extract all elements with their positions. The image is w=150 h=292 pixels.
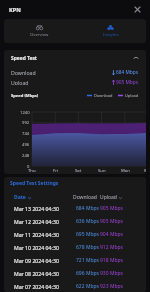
staticText: Mar 07 2024 04:30 [14, 283, 59, 290]
button[interactable]: Overview [4, 19, 75, 43]
staticText: Thu [28, 168, 36, 174]
staticText: 721 Mbps [76, 257, 99, 264]
staticText: Overview [30, 32, 49, 38]
staticText: Mar 12 2024 04:30 [14, 218, 59, 225]
button[interactable]: Mar 08 2024 04:30 [4, 267, 146, 280]
staticText: Download [94, 93, 113, 98]
staticText: 912 Mbps [100, 244, 123, 251]
staticText: Mar 10 2024 04:30 [14, 244, 59, 251]
staticText: Upload [100, 194, 117, 201]
staticText: 905 Mbps [100, 205, 123, 212]
staticText: 636 Mbps [76, 218, 99, 225]
button[interactable]: Mar 11 2024 04:30 [4, 228, 146, 241]
staticText: Fri [53, 168, 58, 174]
button[interactable]: Date [14, 193, 31, 202]
button[interactable]: Mar 07 2024 04:30 [4, 280, 146, 292]
staticText: 992 [22, 120, 30, 126]
staticText: 496 [22, 142, 30, 148]
staticText: Mar 13 2024 04:30 [14, 205, 59, 212]
staticText: Date [14, 194, 26, 201]
staticText: 905 Mbps [116, 79, 139, 85]
staticText: Sat [75, 168, 82, 174]
staticText: 248 [22, 153, 30, 159]
staticText: Upload [125, 93, 139, 98]
staticText: Download [11, 69, 36, 75]
button[interactable]: Upload [100, 193, 122, 202]
staticText: 684 Mbps [116, 69, 139, 75]
staticText: Sun [98, 168, 106, 174]
button[interactable]: Mar 09 2024 04:30 [4, 254, 146, 267]
staticText: 1240 [20, 110, 30, 116]
staticText: 684 Mbps [76, 205, 99, 212]
button[interactable]: Download [73, 193, 97, 202]
staticText: Speed Test [11, 55, 37, 61]
staticText: Mon [121, 168, 130, 174]
staticText: 622 Mbps [76, 283, 99, 290]
staticText: 695 Mbps [76, 231, 99, 238]
button[interactable]: Mar 13 2024 04:30 [4, 202, 146, 215]
staticText: Speed (Mbps) [11, 93, 39, 98]
staticText: Upload [11, 79, 29, 85]
staticText: 0 [27, 164, 30, 170]
staticText: Wed [144, 168, 146, 174]
button[interactable]: Speed Test Settings [10, 180, 59, 187]
staticText: 744 [22, 131, 30, 137]
staticText: KPN [9, 6, 21, 14]
staticText: Download [73, 194, 97, 201]
staticText: 904 Mbps [100, 231, 123, 238]
staticText: Mar 11 2024 04:30 [14, 231, 59, 238]
button[interactable]: Close [132, 4, 143, 15]
staticText: 923 Mbps [100, 283, 123, 290]
staticText: 678 Mbps [76, 244, 99, 251]
button[interactable]: Insights [75, 19, 146, 43]
staticText: Mar 08 2024 04:30 [14, 270, 59, 277]
staticText: 930 Mbps [100, 270, 123, 277]
staticText: 905 Mbps [100, 218, 123, 225]
staticText: 918 Mbps [100, 257, 123, 264]
button[interactable]: Mar 12 2024 04:30 [4, 215, 146, 228]
other: Collapse [133, 56, 139, 60]
staticText: Mar 09 2024 04:30 [14, 257, 59, 264]
button[interactable]: Speed Test [11, 55, 139, 61]
staticText: 696 Mbps [76, 270, 99, 277]
button[interactable]: Mar 10 2024 04:30 [4, 241, 146, 254]
staticText: Insights [103, 32, 119, 38]
